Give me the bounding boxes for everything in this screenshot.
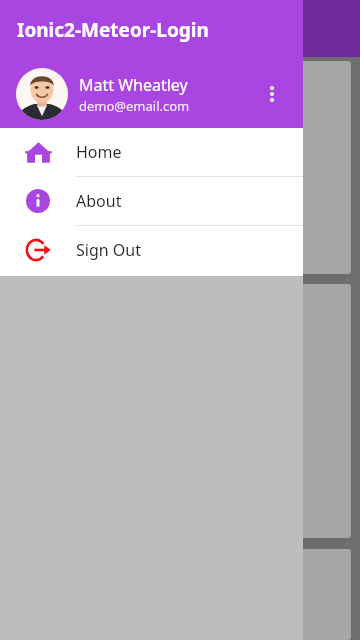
staticText: Matt Wheatley (79, 74, 188, 96)
staticText: Sign Out (76, 239, 141, 261)
staticText: Ionic2-Meteor-Login (17, 17, 209, 43)
staticText: Home (76, 141, 122, 163)
button[interactable]: Home (0, 128, 303, 176)
button[interactable]: More options (251, 73, 293, 115)
button[interactable]: Sign Out (0, 226, 303, 274)
button[interactable]: About (0, 177, 303, 225)
staticText: About (76, 190, 122, 212)
staticText: demo@email.com (79, 97, 190, 115)
